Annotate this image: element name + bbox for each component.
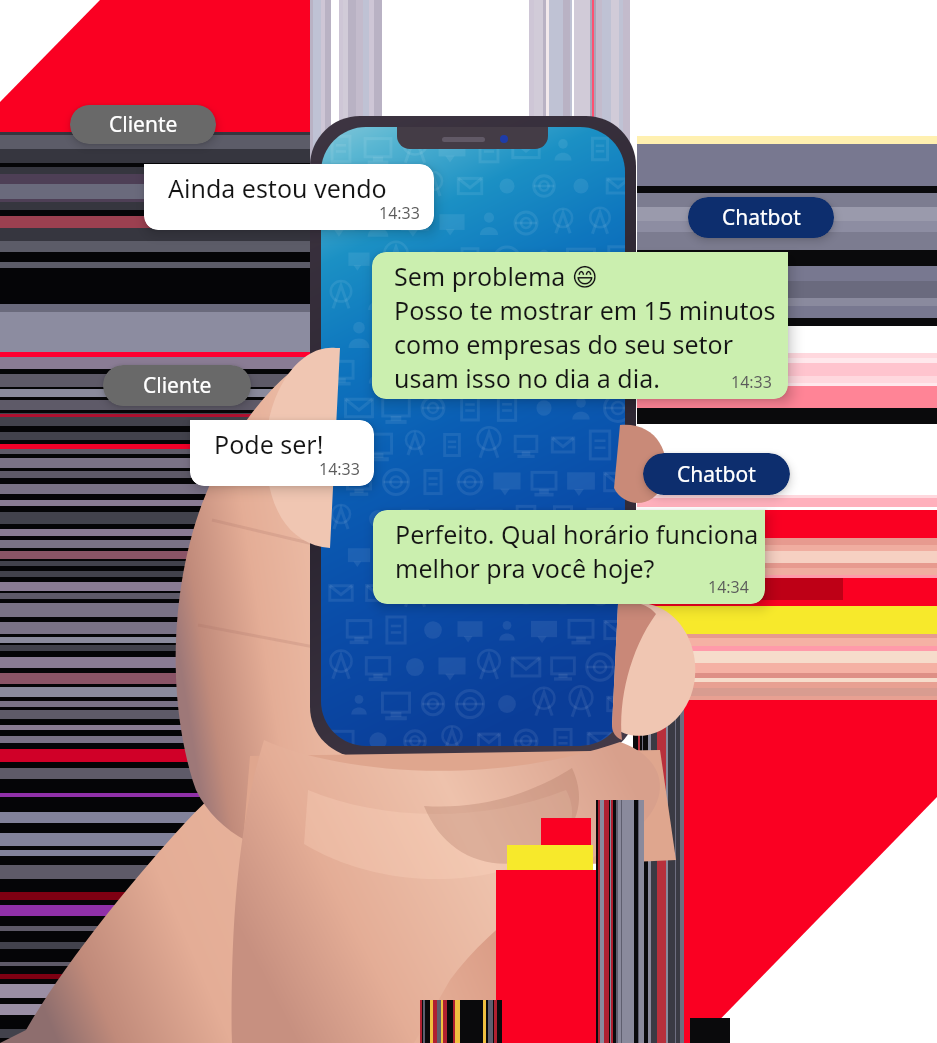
staticText: como empresas do seu setor: [394, 327, 733, 361]
staticText: Cliente: [143, 371, 212, 400]
button[interactable]: Chatbot: [643, 453, 790, 495]
staticText: Chatbot: [677, 460, 756, 489]
button[interactable]: Ainda estou vendo: [144, 164, 434, 230]
button[interactable]: Sem problema 😄: [372, 252, 788, 399]
button[interactable]: Pode ser!: [190, 420, 374, 486]
button[interactable]: Perfeito. Qual horário funciona: [373, 510, 765, 604]
staticText: 14:33: [379, 202, 420, 224]
button[interactable]: Cliente: [70, 105, 216, 144]
staticText: Posso te mostrar em 15 minutos: [394, 293, 776, 327]
staticText: melhor pra você hoje?: [395, 551, 655, 585]
button[interactable]: Cliente: [103, 365, 251, 406]
staticText: Pode ser!: [214, 427, 324, 461]
staticText: Sem problema 😄: [394, 259, 598, 293]
staticText: Ainda estou vendo: [168, 171, 387, 205]
staticText: 14:33: [319, 458, 360, 480]
staticText: 14:34: [708, 576, 749, 598]
staticText: usam isso no dia a dia.: [394, 361, 660, 395]
staticText: Perfeito. Qual horário funciona: [395, 517, 759, 551]
staticText: Chatbot: [722, 203, 801, 232]
staticText: 14:33: [731, 371, 772, 393]
button[interactable]: Chatbot: [688, 197, 834, 238]
button[interactable]: Phone preview: [310, 116, 636, 757]
staticText: Cliente: [109, 110, 178, 139]
